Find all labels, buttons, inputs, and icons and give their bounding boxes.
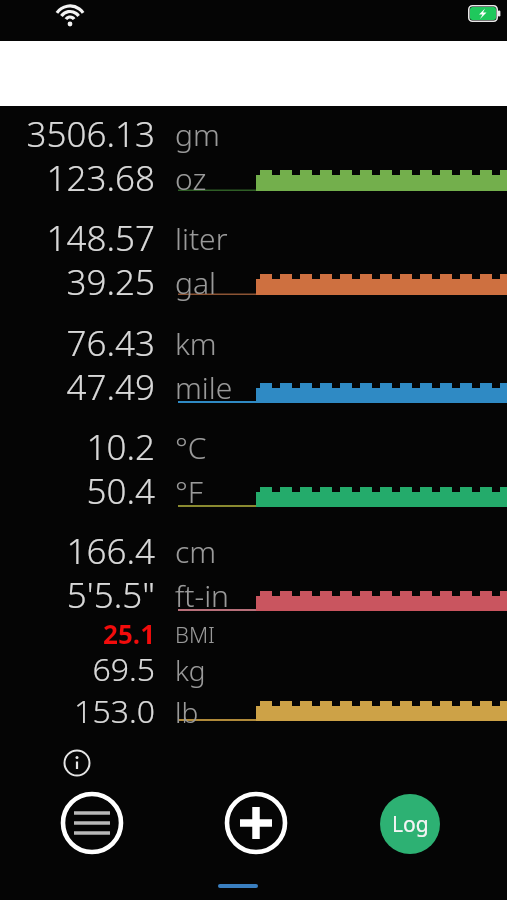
staticText: liter (175, 218, 228, 259)
staticText: 76.43 (5, 319, 155, 367)
button[interactable]: 25.1 (5, 616, 155, 651)
staticText: gal (175, 262, 217, 303)
button[interactable]: 10.2 (5, 423, 155, 471)
staticText: 25.1 (5, 616, 155, 651)
staticText: 153.0 (5, 689, 155, 733)
staticText: 69.5 (5, 647, 155, 691)
button[interactable]: 39.25 (5, 258, 155, 306)
button[interactable]: 69.5 (5, 647, 155, 691)
button[interactable]: Menu (57, 788, 127, 858)
staticText: °C (175, 427, 207, 468)
staticText: cm (175, 531, 217, 572)
staticText: gm (175, 114, 220, 155)
staticText: 148.57 (5, 214, 155, 262)
staticText: 39.25 (5, 258, 155, 306)
button[interactable]: ft-in (175, 575, 265, 616)
button[interactable]: lb (175, 693, 265, 731)
button[interactable]: 3506.13 (5, 110, 155, 158)
staticText: 3506.13 (5, 110, 155, 158)
button[interactable]: 50.4 (5, 467, 155, 515)
button[interactable]: Log (380, 794, 440, 854)
staticText: ft-in (175, 575, 229, 616)
staticText: 166.4 (5, 527, 155, 575)
button[interactable]: °F (175, 471, 265, 512)
button[interactable]: gm (175, 114, 265, 155)
button[interactable]: 47.49 (5, 363, 155, 411)
staticText: 50.4 (5, 467, 155, 515)
button[interactable]: 123.68 (5, 154, 155, 202)
staticText: mile (175, 367, 233, 408)
staticText: 5'5.5" (5, 571, 155, 619)
button[interactable]: liter (175, 218, 265, 259)
staticText: BMI (175, 619, 215, 649)
button[interactable]: cm (175, 531, 265, 572)
button[interactable]: kg (175, 651, 265, 689)
staticText: kg (175, 651, 206, 689)
button[interactable]: 5'5.5" (5, 571, 155, 619)
button[interactable]: oz (175, 158, 265, 199)
staticText: 10.2 (5, 423, 155, 471)
button[interactable]: °C (175, 427, 265, 468)
button[interactable]: 166.4 (5, 527, 155, 575)
staticText: oz (175, 158, 207, 199)
button[interactable]: BMI (175, 619, 265, 649)
staticText: km (175, 323, 217, 364)
button[interactable]: km (175, 323, 265, 364)
staticText: lb (175, 693, 199, 731)
staticText: Log (392, 810, 429, 839)
staticText: 123.68 (5, 154, 155, 202)
button[interactable]: mile (175, 367, 265, 408)
button[interactable]: 76.43 (5, 319, 155, 367)
staticText: °F (175, 471, 203, 512)
staticText: 47.49 (5, 363, 155, 411)
button[interactable]: Add entry (221, 788, 291, 858)
button[interactable]: 153.0 (5, 689, 155, 733)
button[interactable]: gal (175, 262, 265, 303)
button[interactable]: 148.57 (5, 214, 155, 262)
button[interactable]: Information (59, 745, 95, 781)
